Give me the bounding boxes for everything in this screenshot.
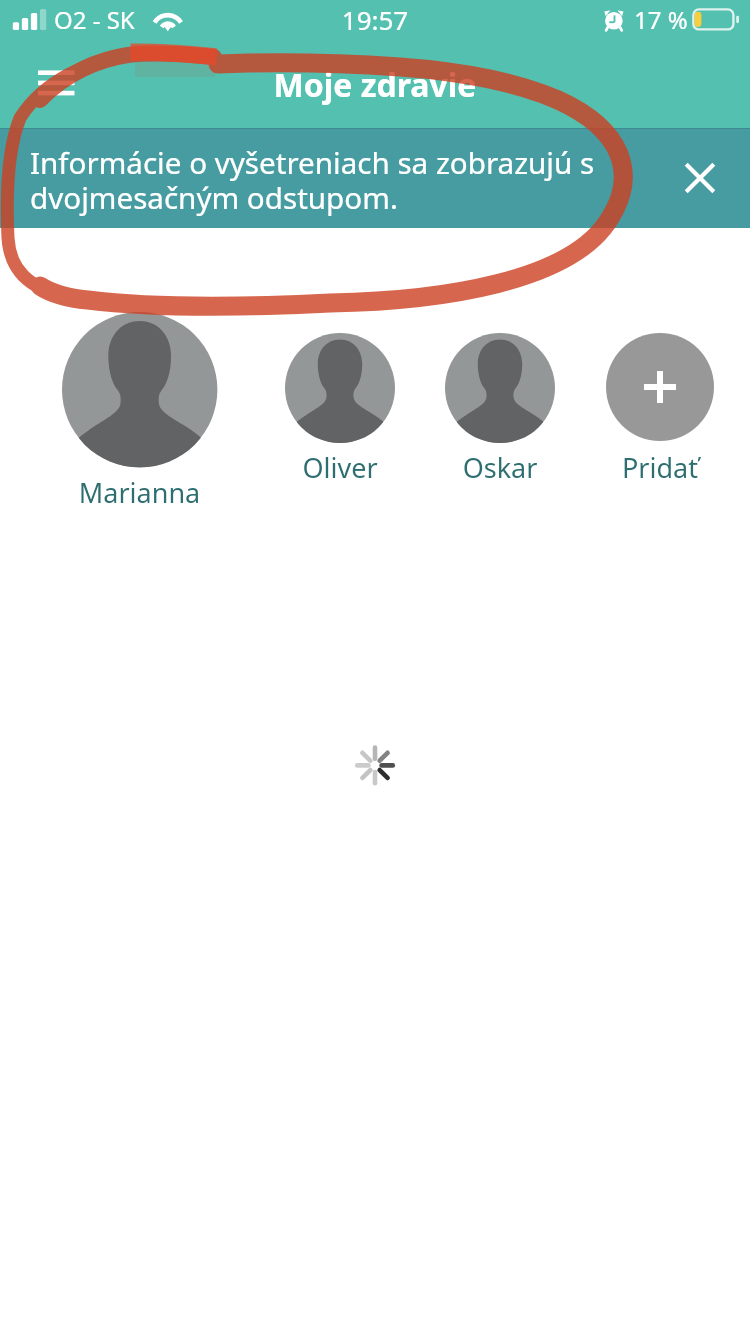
button[interactable]: Oliver	[277, 327, 403, 487]
staticText: Pridať	[598, 449, 722, 486]
staticText: Moje zdravie	[0, 63, 750, 107]
button[interactable]: Menu	[20, 58, 92, 110]
button[interactable]: Oskar	[437, 327, 563, 487]
staticText: O2 - SK	[54, 3, 135, 36]
staticText: Oskar	[437, 449, 563, 486]
button[interactable]: Marianna	[54, 306, 225, 512]
staticText: Marianna	[54, 474, 225, 511]
staticText: Oliver	[277, 449, 403, 486]
staticText: Informácie o vyšetreniach sa zobrazujú s…	[30, 142, 670, 218]
staticText: 19:57	[0, 2, 750, 37]
button[interactable]: Close	[672, 150, 728, 206]
staticText: 17 %	[634, 3, 688, 36]
button[interactable]: Pridať	[598, 327, 722, 487]
